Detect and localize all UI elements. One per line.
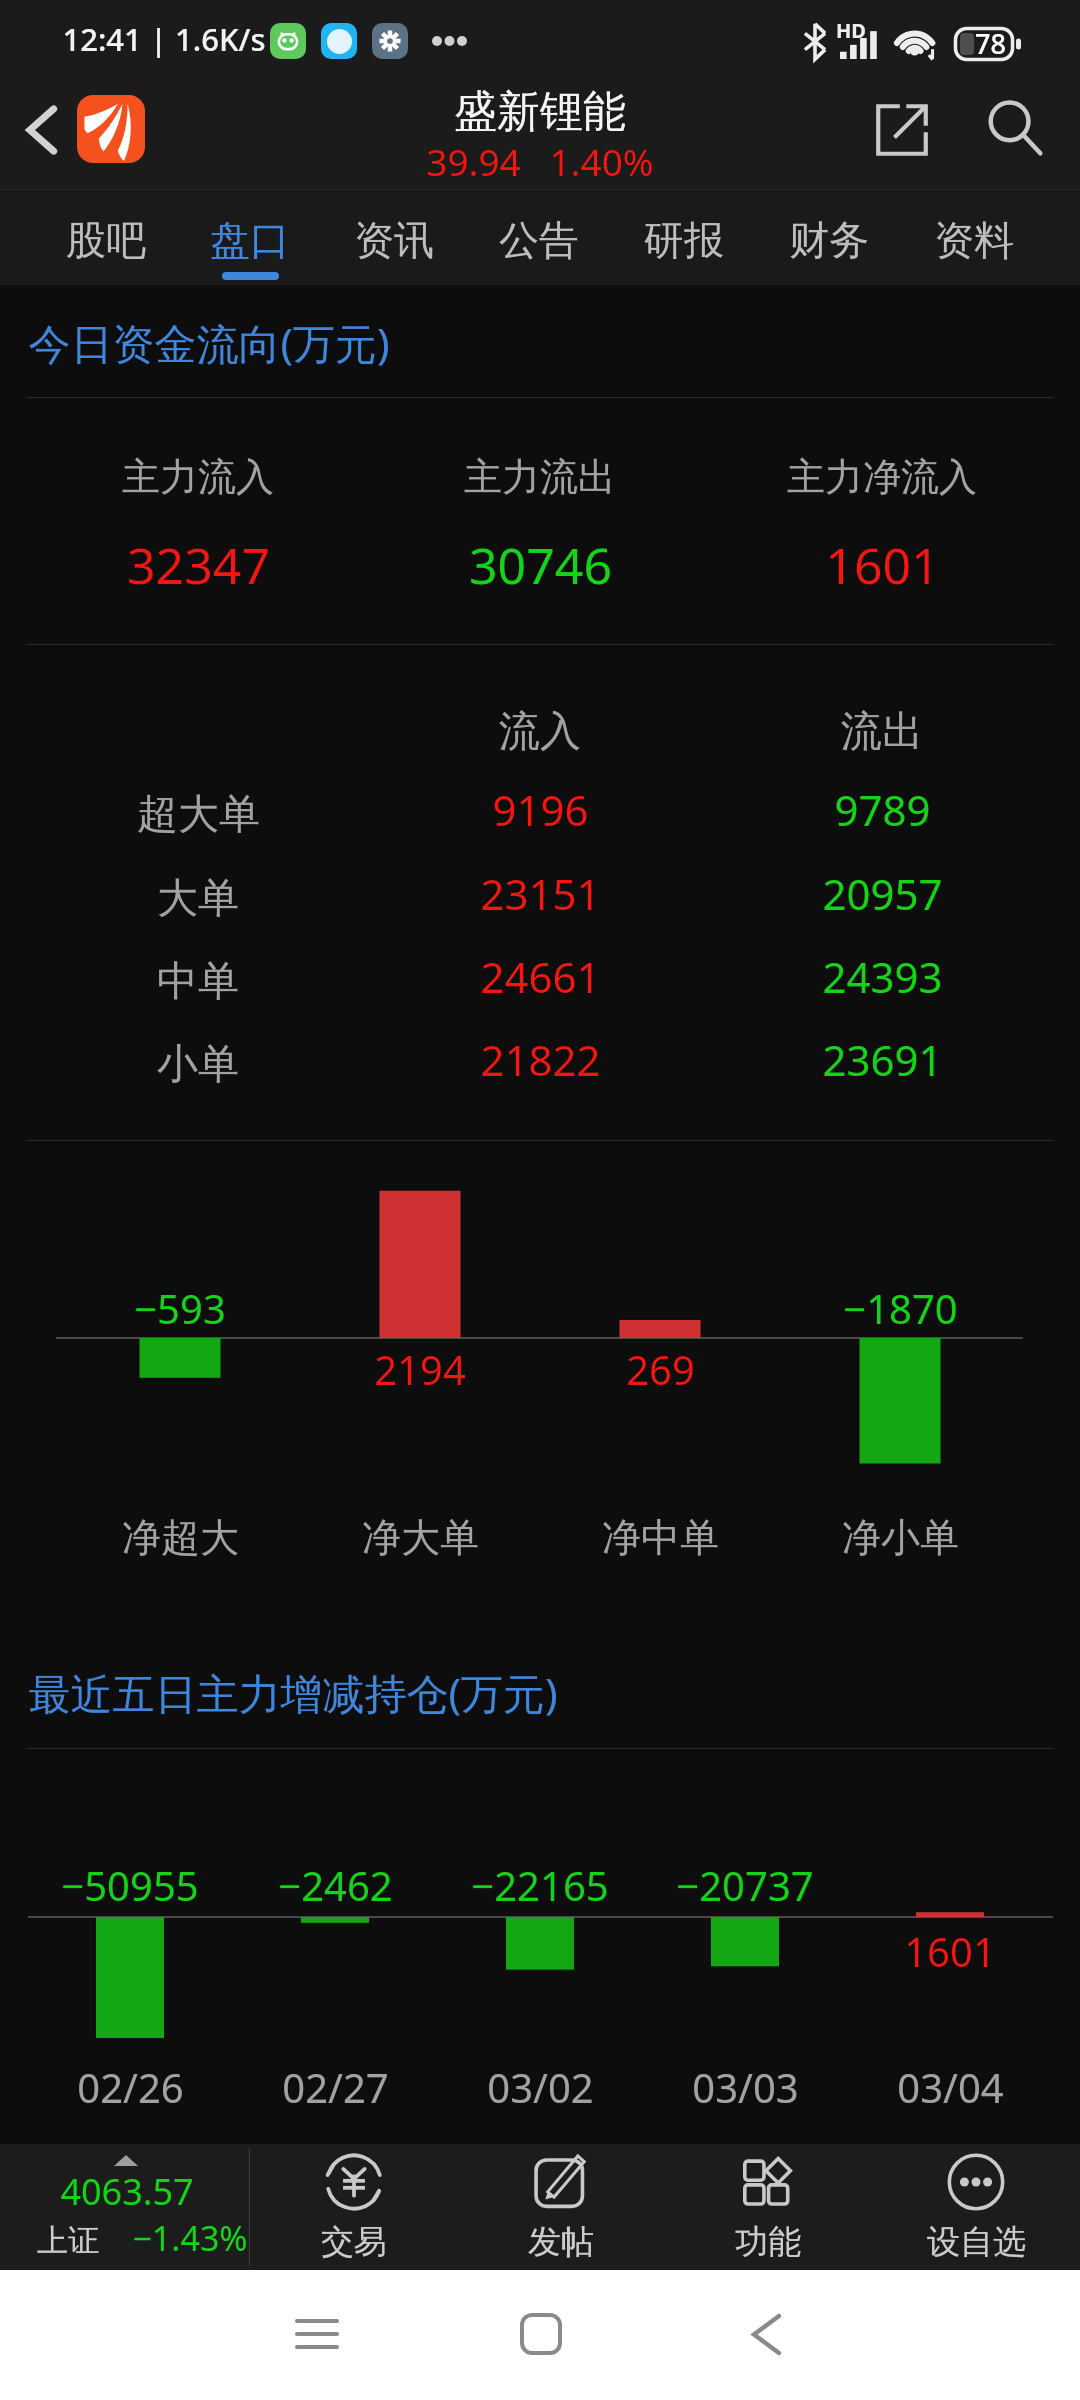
staticText: 股吧 bbox=[66, 215, 146, 265]
button[interactable]: 资讯 bbox=[322, 190, 466, 285]
button[interactable]: 发帖 bbox=[457, 2144, 664, 2270]
button[interactable]: 设自选 bbox=[872, 2144, 1080, 2270]
staticText: 1601 bbox=[825, 531, 940, 599]
button[interactable]: Recent apps bbox=[272, 2289, 362, 2379]
staticText: 23151 bbox=[480, 865, 601, 922]
staticText: 最近五日主力增减持仓(万元) bbox=[28, 1664, 558, 1721]
staticText: 超大单 bbox=[137, 789, 260, 841]
staticText: −2462 bbox=[278, 1858, 393, 1912]
staticText: 资料 bbox=[934, 215, 1014, 265]
staticText: 交易 bbox=[321, 2221, 387, 2263]
staticText: 9789 bbox=[834, 781, 931, 838]
staticText: 4063.57 bbox=[60, 2167, 194, 2216]
staticText: 24393 bbox=[822, 948, 943, 1005]
button[interactable]: 盘口 bbox=[178, 190, 322, 285]
staticText: −593 bbox=[134, 1281, 226, 1335]
staticText: 39.94 bbox=[426, 136, 521, 186]
button[interactable]: 公告 bbox=[466, 190, 611, 285]
staticText: 净大单 bbox=[362, 1513, 479, 1562]
staticText: −50955 bbox=[61, 1858, 199, 1912]
staticText: 23691 bbox=[822, 1031, 943, 1088]
staticText: 流出 bbox=[841, 706, 923, 758]
button[interactable]: Back bbox=[6, 95, 76, 165]
button[interactable]: 研报 bbox=[611, 190, 756, 285]
staticText: 公告 bbox=[499, 215, 579, 265]
staticText: −22165 bbox=[471, 1858, 609, 1912]
staticText: 03/03 bbox=[692, 2060, 799, 2114]
staticText: 03/02 bbox=[487, 2060, 594, 2114]
staticText: 30746 bbox=[469, 531, 612, 599]
staticText: −1870 bbox=[843, 1281, 958, 1335]
button[interactable]: 财务 bbox=[756, 190, 901, 285]
staticText: 9196 bbox=[492, 781, 589, 838]
staticText: 净小单 bbox=[842, 1513, 959, 1562]
staticText: 净中单 bbox=[602, 1513, 719, 1562]
staticText: −1.43% bbox=[132, 2215, 248, 2261]
staticText: 02/27 bbox=[282, 2060, 389, 2114]
staticText: 中单 bbox=[157, 956, 239, 1008]
staticText: 24661 bbox=[480, 948, 601, 1005]
staticText: 21822 bbox=[480, 1031, 601, 1088]
button[interactable]: Share bbox=[866, 94, 938, 166]
staticText: 1.40% bbox=[549, 136, 654, 186]
staticText: 主力流出 bbox=[464, 453, 616, 501]
staticText: 269 bbox=[626, 1342, 695, 1396]
staticText: 流入 bbox=[499, 706, 581, 758]
button[interactable]: Home bbox=[496, 2289, 586, 2379]
staticText: 净超大 bbox=[122, 1513, 239, 1562]
staticText: 主力净流入 bbox=[787, 453, 977, 501]
button[interactable]: 资料 bbox=[901, 190, 1046, 285]
staticText: 1601 bbox=[904, 1924, 996, 1978]
staticText: 资讯 bbox=[354, 215, 434, 265]
button[interactable]: 功能 bbox=[664, 2144, 872, 2270]
staticText: 02/26 bbox=[77, 2060, 184, 2114]
staticText: 20957 bbox=[822, 865, 943, 922]
staticText: HD bbox=[836, 17, 866, 44]
staticText: 盘口 bbox=[210, 215, 290, 265]
staticText: 盛新锂能 bbox=[454, 85, 626, 139]
staticText: 设自选 bbox=[927, 2221, 1026, 2263]
staticText: 03/04 bbox=[897, 2060, 1004, 2114]
staticText: −20737 bbox=[676, 1858, 814, 1912]
staticText: 上证 bbox=[37, 2221, 99, 2260]
staticText: 今日资金流向(万元) bbox=[28, 314, 390, 371]
staticText: 2194 bbox=[374, 1342, 466, 1396]
staticText: 32347 bbox=[127, 531, 270, 599]
staticText: 研报 bbox=[644, 215, 724, 265]
button[interactable]: Search bbox=[980, 93, 1052, 165]
staticText: 主力流入 bbox=[122, 453, 274, 501]
staticText: 财务 bbox=[789, 215, 869, 265]
staticText: 12:41 | 1.6K/s bbox=[62, 18, 266, 60]
button[interactable]: Back bbox=[721, 2289, 811, 2379]
staticText: 78 bbox=[975, 25, 1006, 62]
staticText: 小单 bbox=[157, 1039, 239, 1091]
button[interactable]: 交易 bbox=[250, 2144, 457, 2270]
button[interactable]: 股吧 bbox=[34, 190, 178, 285]
button[interactable]: 4063.57 bbox=[0, 2144, 250, 2270]
staticText: 发帖 bbox=[528, 2221, 594, 2263]
other: East Money app icon bbox=[77, 95, 145, 163]
staticText: 功能 bbox=[735, 2221, 801, 2263]
staticText: 大单 bbox=[157, 873, 239, 925]
